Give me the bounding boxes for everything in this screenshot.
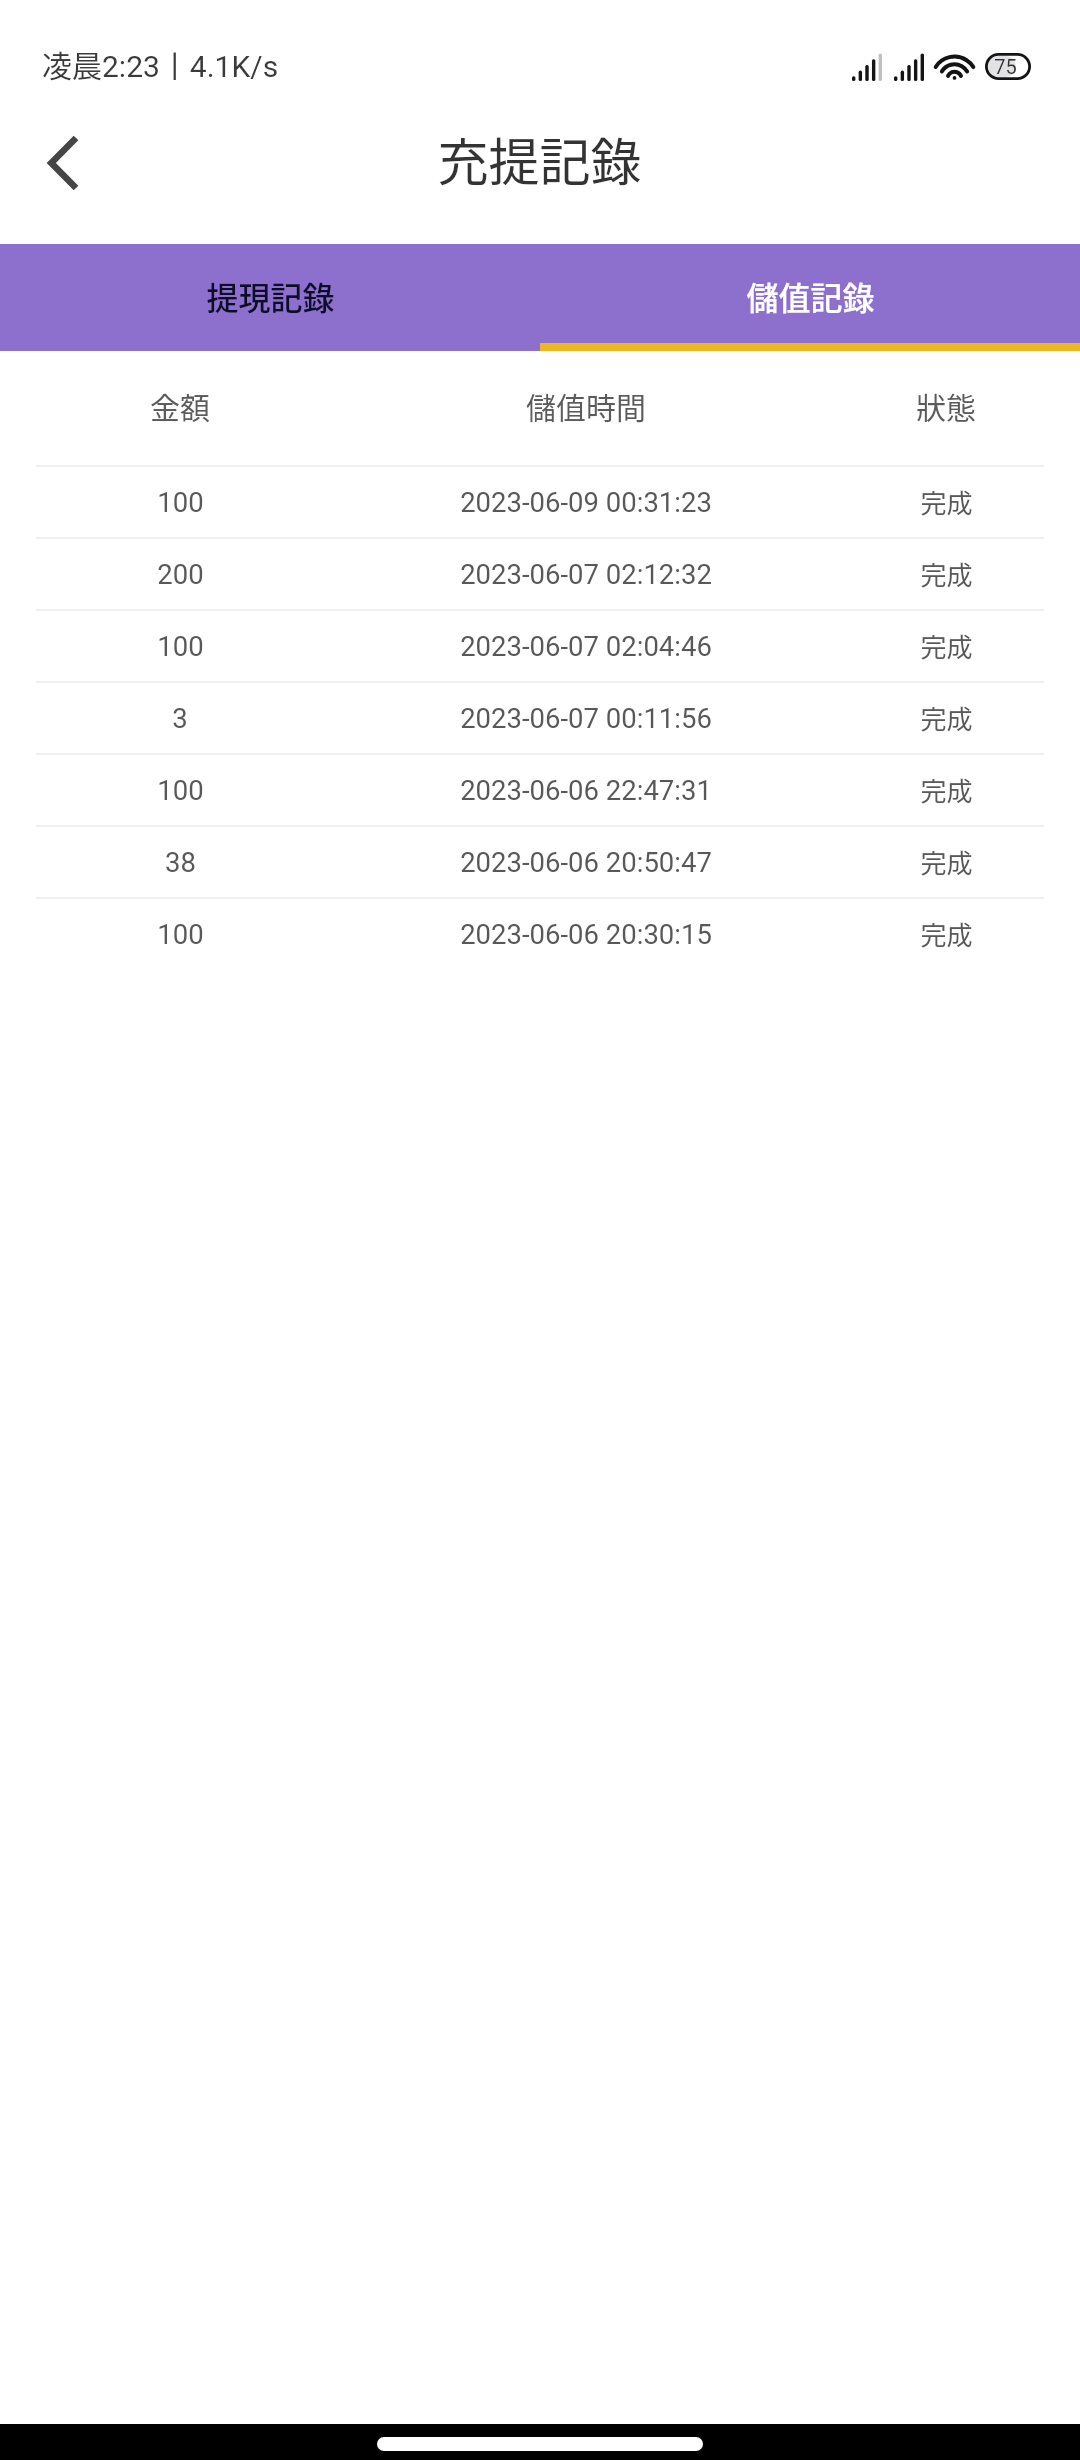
staticText: 2023-06-06 22:47:31: [460, 774, 712, 806]
staticText: 儲值記錄: [746, 273, 875, 319]
staticText: 完成: [920, 483, 973, 521]
staticText: 2023-06-07 00:11:56: [460, 702, 712, 734]
staticText: 完成: [920, 915, 973, 953]
button[interactable]: 儲值記錄: [540, 244, 1080, 351]
staticText: 100: [157, 630, 204, 662]
staticText: 200: [157, 558, 204, 590]
staticText: 完成: [920, 699, 973, 737]
staticText: 完成: [920, 771, 973, 809]
button[interactable]: 提現記錄: [0, 244, 540, 351]
staticText: 提現記錄: [206, 273, 335, 319]
staticText: 2023-06-07 02:12:32: [460, 558, 712, 590]
staticText: 38: [165, 846, 196, 878]
staticText: 完成: [920, 555, 973, 593]
staticText: 2023-06-07 02:04:46: [460, 630, 712, 662]
staticText: 狀態: [916, 384, 976, 427]
staticText: 2023-06-06 20:30:15: [460, 918, 712, 950]
staticText: 2023-06-06 20:50:47: [460, 846, 712, 878]
button[interactable]: 3: [0, 683, 1080, 753]
staticText: 100: [157, 774, 204, 806]
staticText: 75: [994, 55, 1017, 78]
button[interactable]: 200: [0, 539, 1080, 609]
button[interactable]: 100: [0, 755, 1080, 825]
staticText: 充提記錄: [437, 122, 642, 196]
staticText: 儲值時間: [526, 384, 646, 427]
button[interactable]: 38: [0, 827, 1080, 897]
button[interactable]: Back: [16, 108, 108, 218]
staticText: 100: [157, 486, 204, 518]
staticText: 3: [172, 702, 188, 734]
staticText: 完成: [920, 627, 973, 665]
staticText: 完成: [920, 843, 973, 881]
staticText: 100: [157, 918, 204, 950]
button[interactable]: 100: [0, 611, 1080, 681]
staticText: 金額: [150, 384, 210, 427]
button[interactable]: 100: [0, 467, 1080, 537]
staticText: 2023-06-09 00:31:23: [460, 486, 712, 518]
staticText: 凌晨2:23丨4.1K/s: [42, 42, 279, 85]
button[interactable]: 100: [0, 899, 1080, 969]
